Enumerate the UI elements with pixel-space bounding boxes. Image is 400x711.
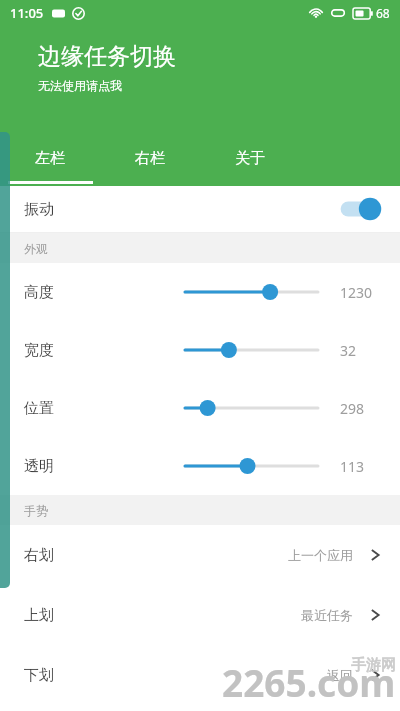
button[interactable]: 关于 <box>200 138 300 186</box>
staticText: 返回 <box>327 667 353 683</box>
staticText: 右划 <box>24 546 54 565</box>
button[interactable]: 位置 <box>0 379 400 437</box>
staticText: 68 <box>376 5 390 21</box>
button[interactable]: 透明 <box>0 437 400 495</box>
staticText: 振动 <box>24 200 54 219</box>
staticText: 2265.com <box>222 657 396 707</box>
staticText: 透明 <box>24 457 54 476</box>
staticText: 11:05 <box>10 4 44 22</box>
staticText: 手游网 <box>351 656 396 675</box>
staticText: 高度 <box>24 283 54 302</box>
staticText: 1230 <box>340 283 373 302</box>
staticText: 下划 <box>24 666 54 685</box>
button[interactable]: 左栏 <box>0 138 100 186</box>
button[interactable]: 宽度 <box>0 321 400 379</box>
staticText: 113 <box>340 457 365 476</box>
staticText: 右栏 <box>135 149 165 168</box>
button[interactable]: 右栏 <box>100 138 200 186</box>
staticText: 手势 <box>24 503 48 518</box>
staticText: 上划 <box>24 606 54 625</box>
staticText: 宽度 <box>24 341 54 360</box>
button[interactable]: 高度 <box>0 263 400 321</box>
staticText: 无法使用请点我 <box>38 78 122 93</box>
button[interactable]: 下划 <box>0 645 400 705</box>
button[interactable]: 振动 <box>0 186 400 232</box>
staticText: 外观 <box>24 241 48 256</box>
staticText: 32 <box>340 341 357 360</box>
staticText: 左栏 <box>35 149 65 168</box>
staticText: 298 <box>340 399 365 418</box>
button[interactable]: 右划 <box>0 525 400 585</box>
button[interactable]: 上划 <box>0 585 400 645</box>
staticText: 关于 <box>235 149 265 168</box>
button[interactable]: Vibration toggle <box>336 195 382 223</box>
staticText: 最近任务 <box>301 607 353 623</box>
staticText: 边缘任务切换 <box>38 42 176 71</box>
staticText: 位置 <box>24 399 54 418</box>
staticText: 上一个应用 <box>288 547 353 563</box>
